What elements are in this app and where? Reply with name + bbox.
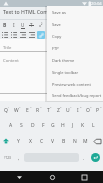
button[interactable]: Backspace [91,133,103,149]
button[interactable]: M [80,135,91,148]
button[interactable]: D [27,119,38,132]
staticText: Single toolbar [52,70,79,75]
staticText: I [13,22,15,29]
staticText: x² [39,23,43,28]
button[interactable]: K [78,119,88,132]
staticText: ?123 [4,156,11,160]
button[interactable]: N [69,135,80,148]
button[interactable]: U [63,104,73,117]
button[interactable]: Back [6,171,32,183]
button[interactable]: Format [9,20,18,30]
staticText: Dark theme [52,58,75,63]
button[interactable]: Format [27,30,36,39]
button[interactable]: Format [36,20,45,30]
button[interactable]: Home [39,171,65,183]
button[interactable]: P [93,104,103,117]
staticText: Y [17,138,20,145]
button[interactable]: Insert link [36,30,45,39]
staticText: 2 [19,105,21,108]
button[interactable]: Content [0,52,103,94]
button[interactable]: Single toolbar [47,66,103,78]
staticText: A [9,122,13,129]
staticText: B [62,138,66,145]
staticText: 6 [60,105,62,108]
button[interactable]: Q [0,104,11,117]
staticText: 20:04 [91,1,102,7]
staticText: Save [52,22,61,27]
button[interactable]: O [83,104,93,117]
staticText: L [92,122,95,129]
staticText: FTP [52,46,59,51]
button[interactable]: F [38,119,48,132]
button[interactable]: Recents [71,171,97,183]
staticText: T [30,22,33,28]
staticText: K [81,122,85,129]
button[interactable]: Preview web content [47,78,103,90]
staticText: H [61,122,65,129]
staticText: M [83,138,88,145]
staticText: D [31,122,35,129]
staticText: Text to HTML Conv [3,8,50,15]
button[interactable]: I [73,104,83,117]
button[interactable]: Y [12,135,24,148]
button[interactable]: ?123 [0,149,14,166]
staticText: . [83,155,85,161]
button[interactable]: Send feedback/bug report [47,90,103,101]
button[interactable]: Enter [88,149,103,166]
staticText: Title [3,45,12,51]
button[interactable]: . [80,149,88,166]
button[interactable]: A [5,119,16,132]
staticText: Z [57,107,60,114]
staticText: 7 [70,105,72,108]
button[interactable]: Format [18,30,27,39]
button[interactable]: , [14,149,23,166]
button[interactable]: Format [9,30,18,39]
button[interactable]: Format [0,30,9,39]
button[interactable]: Save as [47,6,103,18]
button[interactable]: T [43,104,53,117]
staticText: S [20,122,23,129]
button[interactable]: Shift [0,133,12,149]
staticText: J [72,122,74,129]
staticText: 9 [90,105,92,108]
staticText: T [47,107,50,114]
button[interactable]: Dark theme [47,54,103,66]
staticText: Q [4,107,8,114]
staticText: , [18,155,20,161]
staticText: U [66,107,70,114]
button[interactable]: Format [0,20,9,30]
staticText: 8 [80,105,82,108]
staticText: N [73,138,77,145]
button[interactable]: B [58,135,69,148]
button[interactable]: C [36,135,47,148]
button[interactable]: FTP [47,42,103,54]
button[interactable]: E [22,104,33,117]
staticText: 0 [100,105,102,108]
staticText: E [26,107,29,114]
button[interactable]: S [16,119,27,132]
button[interactable]: Title [0,39,103,52]
button[interactable]: W [11,104,22,117]
button[interactable]: X [24,135,36,148]
button[interactable]: H [58,119,68,132]
button[interactable]: Save [47,18,103,30]
button[interactable]: J [68,119,78,132]
staticText: X [29,138,32,145]
button[interactable]: Copy [47,30,103,42]
button[interactable]: V [47,135,58,148]
staticText: 4 [40,105,42,108]
staticText: Save as [52,10,66,15]
staticText: 5 [50,105,52,108]
staticText: O [86,107,90,114]
button[interactable]: Format [27,20,36,30]
button[interactable]: L [88,119,98,132]
staticText: V [51,138,55,145]
button[interactable]: R [33,104,43,117]
button[interactable]: G [48,119,58,132]
staticText: C [40,138,44,145]
staticText: B [3,22,7,29]
staticText: R [36,107,40,114]
button[interactable]: Format [18,20,27,30]
button[interactable]: Z [53,104,63,117]
